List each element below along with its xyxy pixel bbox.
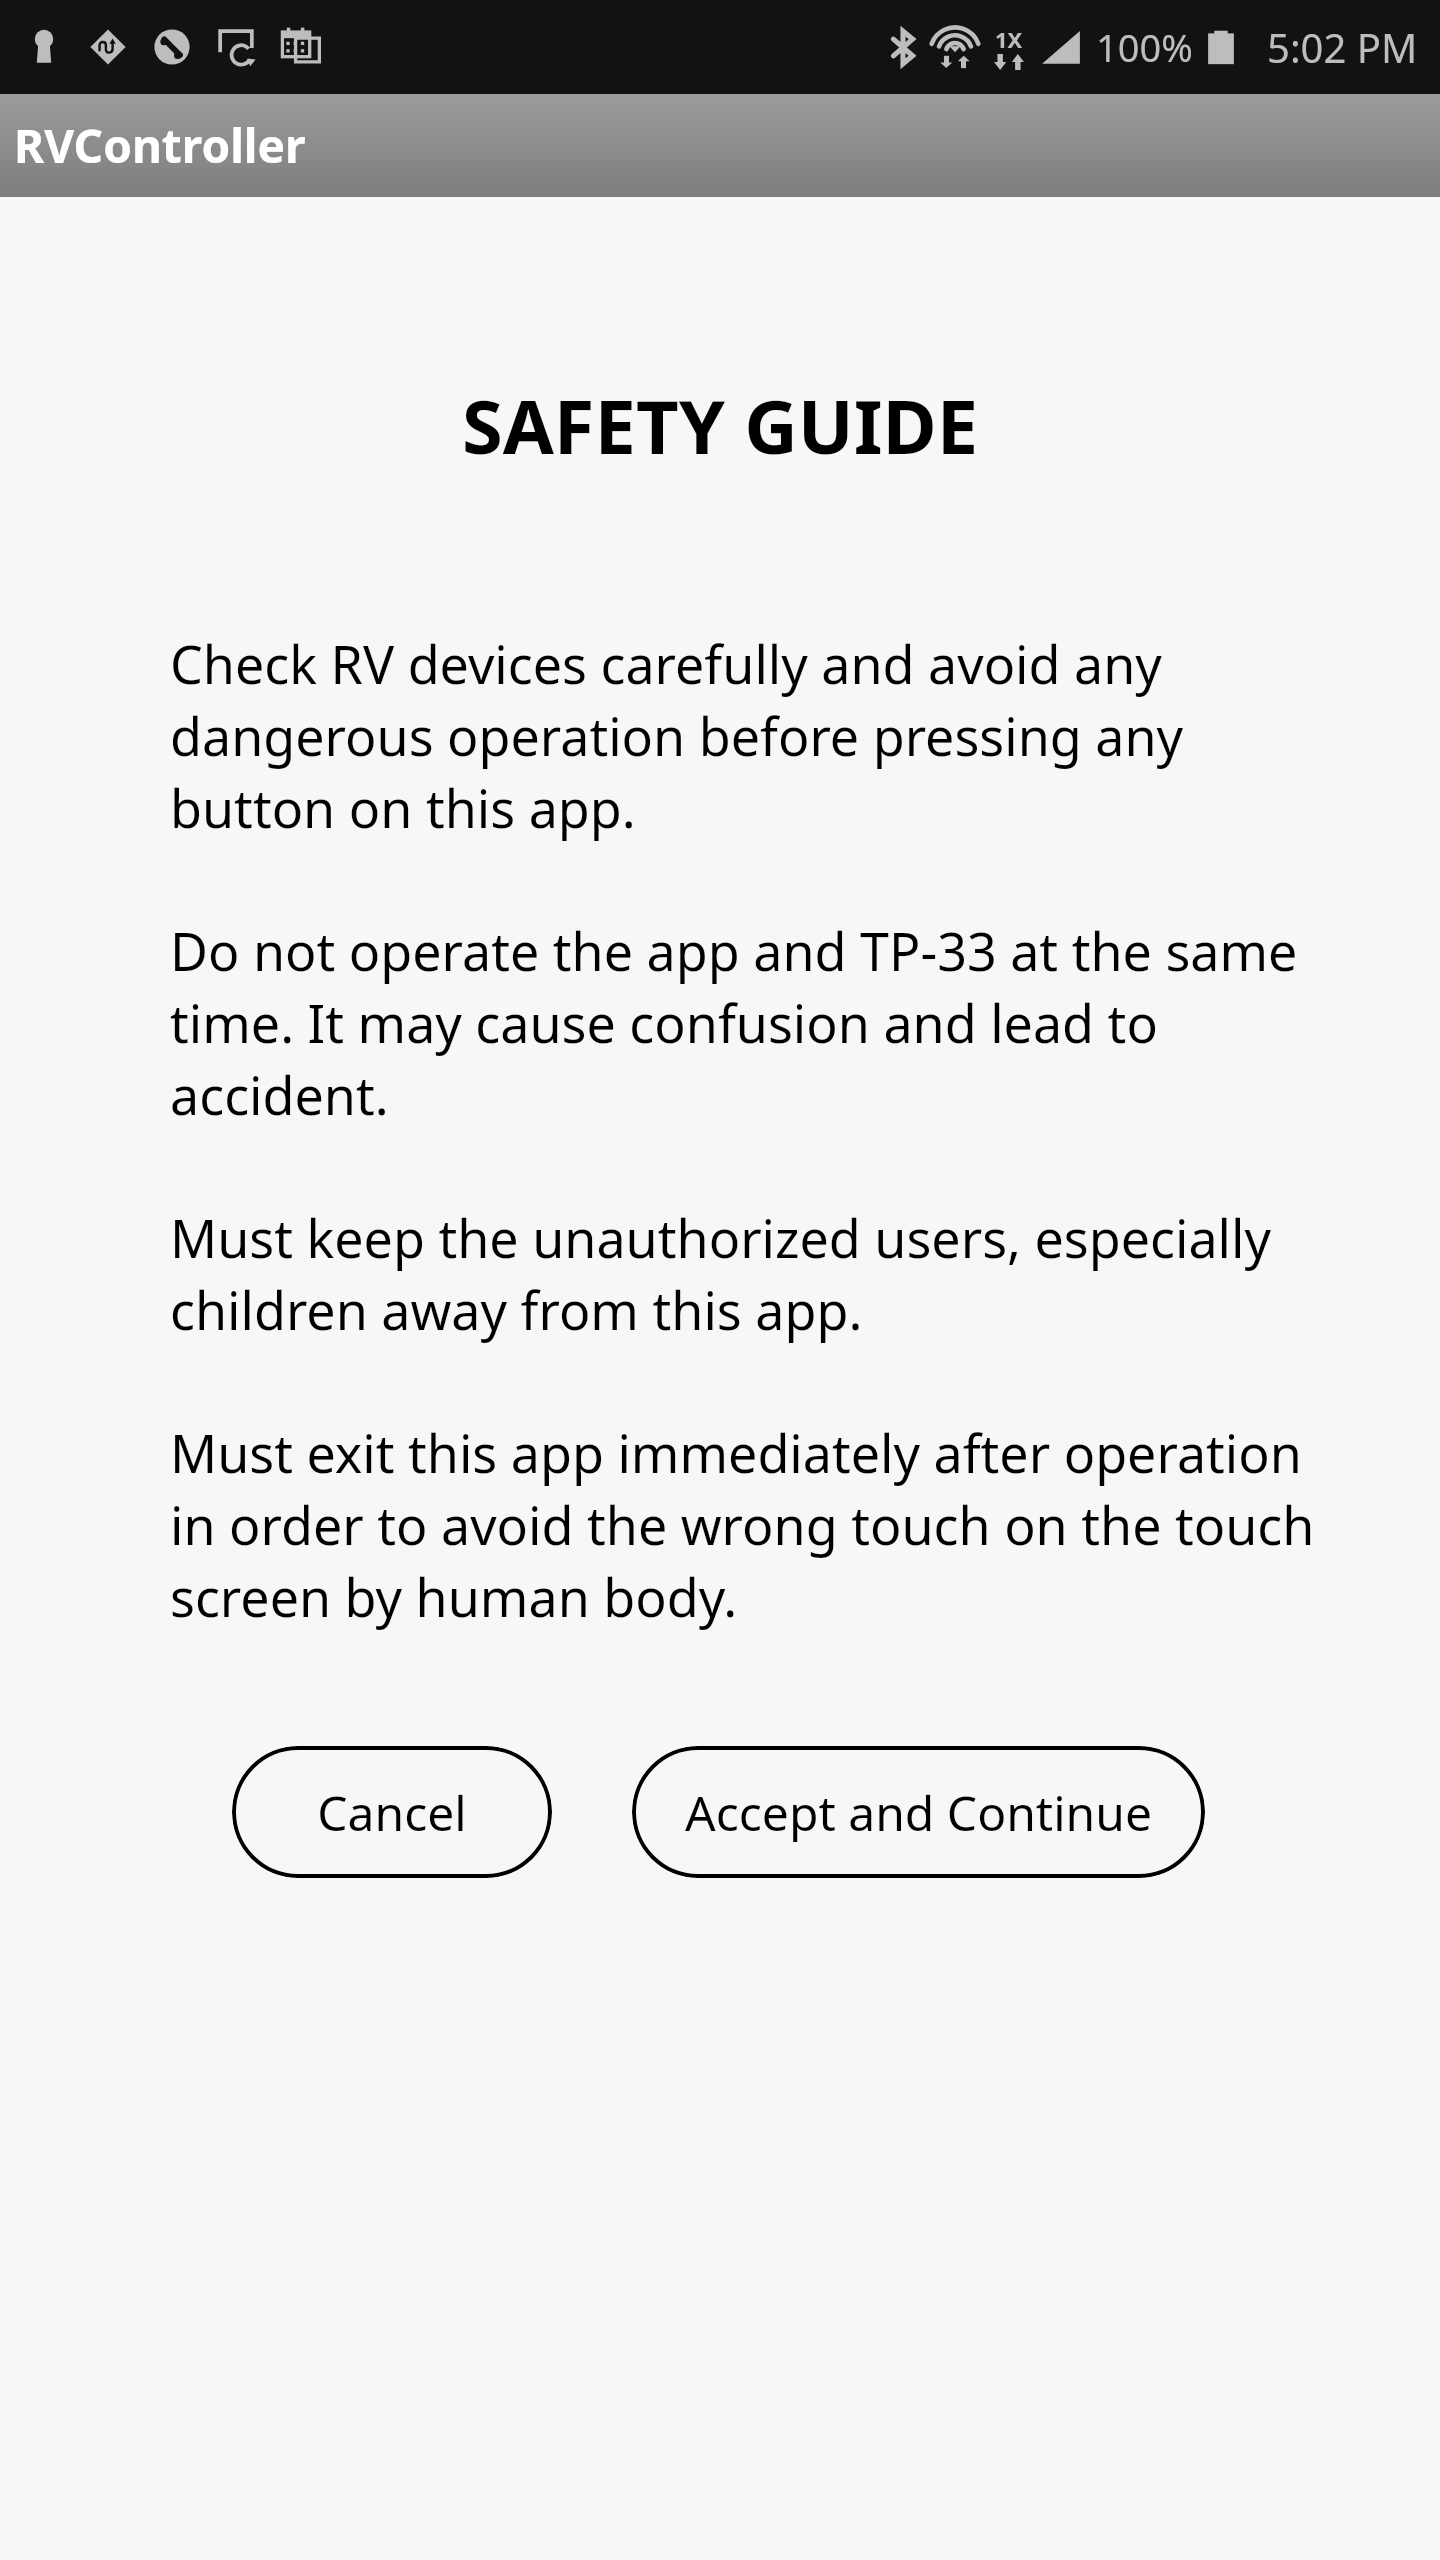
staticText: 5:02 PM xyxy=(1267,20,1418,74)
staticText: SAFETY GUIDE xyxy=(0,375,1440,476)
button[interactable]: Cancel xyxy=(232,1746,552,1878)
staticText: RVController xyxy=(14,114,306,177)
staticText: Must keep the unauthorized users, especi… xyxy=(170,1202,1356,1345)
button[interactable]: Accept and Continue xyxy=(632,1746,1205,1878)
staticText: Check RV devices carefully and avoid any… xyxy=(170,628,1356,843)
staticText: 100% xyxy=(1096,21,1193,73)
staticText: Cancel xyxy=(317,1780,467,1845)
staticText: Accept and Continue xyxy=(685,1780,1152,1845)
staticText: 1X xyxy=(995,24,1023,54)
staticText: Do not operate the app and TP-33 at the … xyxy=(170,915,1356,1130)
staticText: Must exit this app immediately after ope… xyxy=(170,1417,1356,1632)
